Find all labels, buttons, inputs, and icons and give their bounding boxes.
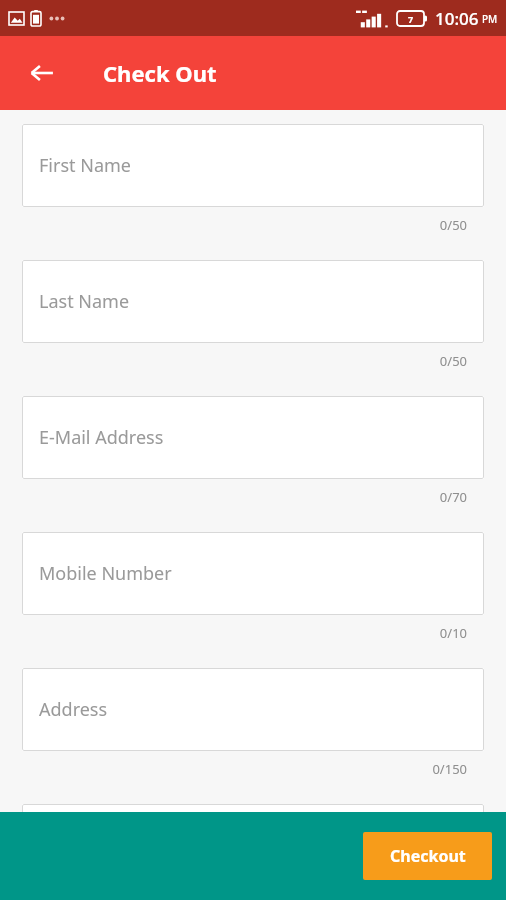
staticText: Address	[39, 697, 108, 722]
button[interactable]: Back	[18, 49, 66, 97]
staticText: 0/70	[439, 488, 467, 506]
staticText: 10:06	[435, 7, 479, 30]
staticText: Checkout	[390, 845, 466, 867]
button[interactable]: First Name	[22, 124, 484, 207]
staticText: Last Name	[39, 289, 130, 314]
staticText: First Name	[39, 153, 131, 178]
staticText: 7	[408, 13, 414, 25]
staticText: 0/50	[439, 216, 467, 234]
button[interactable]: Mobile Number	[22, 532, 484, 615]
staticText: Mobile Number	[39, 561, 172, 586]
staticText: Check Out	[103, 58, 217, 88]
staticText: PM	[482, 12, 498, 26]
button[interactable]: Checkout	[363, 832, 492, 880]
button[interactable]: Last Name	[22, 260, 484, 343]
button[interactable]: E-Mail Address	[22, 396, 484, 479]
staticText: 0/150	[432, 760, 467, 778]
staticText: 0/10	[439, 624, 467, 642]
button[interactable]	[22, 804, 484, 887]
button[interactable]: Address	[22, 668, 484, 751]
staticText: E-Mail Address	[39, 425, 164, 450]
staticText: 0/50	[439, 352, 467, 370]
